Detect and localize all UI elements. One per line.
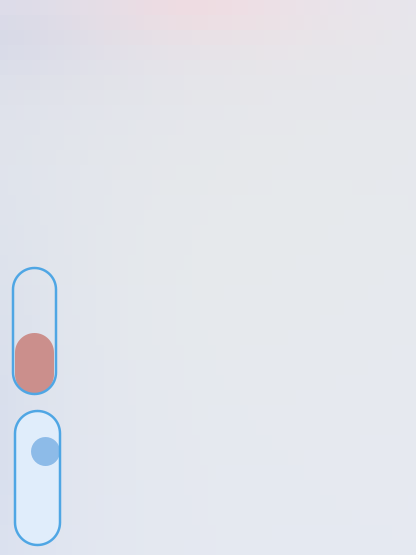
button[interactable]: Level [13,268,56,394]
button[interactable]: Toggle [15,411,60,545]
